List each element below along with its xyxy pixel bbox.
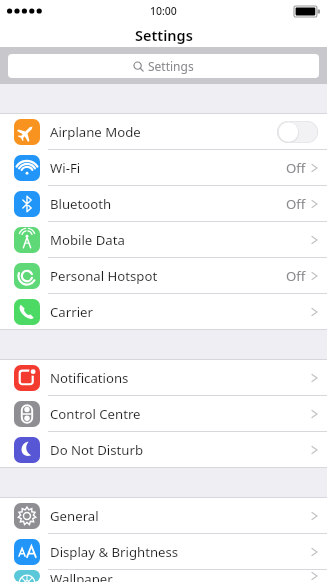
staticText: Off: [286, 195, 306, 213]
staticText: Notifications: [50, 369, 311, 387]
button[interactable]: Settings: [8, 54, 319, 78]
staticText: 10:00: [150, 4, 177, 18]
staticText: Airplane Mode: [50, 123, 277, 141]
button[interactable]: Personal Hotspot: [0, 258, 327, 294]
staticText: Settings: [135, 25, 193, 45]
staticText: Do Not Disturb: [50, 441, 311, 459]
staticText: Settings: [148, 58, 194, 74]
staticText: Wallpaper: [50, 570, 311, 582]
button[interactable]: Carrier: [0, 294, 327, 330]
button[interactable]: Control Centre: [0, 396, 327, 432]
staticText: Personal Hotspot: [50, 267, 286, 285]
button[interactable]: Wi-Fi: [0, 150, 327, 186]
button[interactable]: General: [0, 498, 327, 534]
button[interactable]: Display & Brightness: [0, 534, 327, 570]
button[interactable]: Wallpaper: [0, 570, 327, 582]
staticText: Off: [286, 267, 306, 285]
button[interactable]: Airplane Mode toggle: [277, 121, 318, 143]
staticText: Carrier: [50, 303, 311, 321]
staticText: Display & Brightness: [50, 543, 311, 561]
button[interactable]: Bluetooth: [0, 186, 327, 222]
button[interactable]: Do Not Disturb: [0, 432, 327, 468]
staticText: General: [50, 507, 311, 525]
staticText: Bluetooth: [50, 195, 286, 213]
button[interactable]: Airplane Mode: [0, 114, 327, 150]
staticText: Control Centre: [50, 405, 311, 423]
staticText: Mobile Data: [50, 231, 311, 249]
button[interactable]: Notifications: [0, 360, 327, 396]
staticText: Off: [286, 159, 306, 177]
button[interactable]: Mobile Data: [0, 222, 327, 258]
staticText: Wi-Fi: [50, 159, 286, 177]
